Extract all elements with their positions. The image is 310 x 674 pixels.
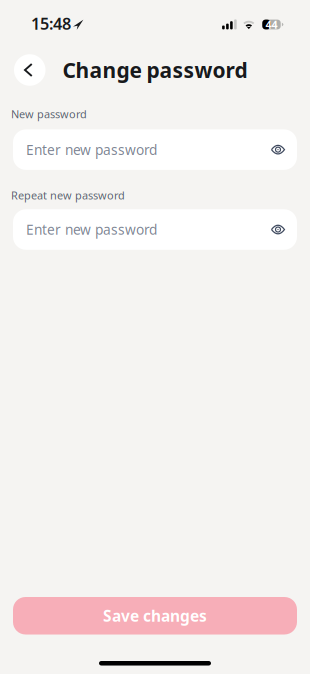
staticText: Enter new password <box>26 220 157 239</box>
button[interactable]: Save changes <box>13 597 297 634</box>
staticText: Change password <box>62 56 247 84</box>
button[interactable]: Back <box>14 54 45 86</box>
staticText: Save changes <box>103 605 207 626</box>
button[interactable]: Show password <box>266 138 290 162</box>
staticText: 15:48 <box>31 12 71 35</box>
staticText: New password <box>11 106 87 121</box>
staticText: 44 <box>265 17 277 32</box>
staticText: Repeat new password <box>11 188 125 203</box>
button[interactable]: Show password <box>266 217 290 241</box>
staticText: Enter new password <box>26 140 157 159</box>
